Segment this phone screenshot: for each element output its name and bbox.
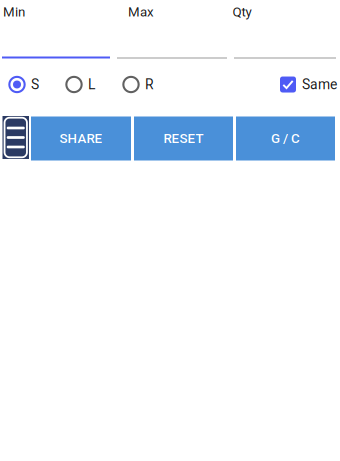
- button[interactable]: Qty: [234, 5, 336, 58]
- staticText: Min: [3, 4, 25, 20]
- button[interactable]: Max: [117, 5, 227, 58]
- staticText: S: [31, 76, 39, 93]
- button[interactable]: L: [65, 69, 113, 99]
- button[interactable]: Menu: [2, 116, 29, 159]
- staticText: RESET: [163, 131, 203, 146]
- staticText: Qty: [232, 4, 251, 20]
- staticText: SHARE: [59, 131, 102, 146]
- button[interactable]: G / C: [236, 116, 335, 160]
- staticText: R: [145, 76, 154, 93]
- staticText: G / C: [271, 131, 300, 146]
- button[interactable]: RESET: [134, 116, 233, 160]
- button[interactable]: Min: [2, 5, 110, 58]
- staticText: Same: [302, 76, 337, 93]
- staticText: L: [88, 76, 95, 93]
- button[interactable]: Same: [280, 69, 336, 99]
- button[interactable]: S: [8, 69, 56, 99]
- button[interactable]: SHARE: [31, 116, 131, 160]
- button[interactable]: R: [122, 69, 170, 99]
- staticText: Max: [128, 4, 154, 20]
